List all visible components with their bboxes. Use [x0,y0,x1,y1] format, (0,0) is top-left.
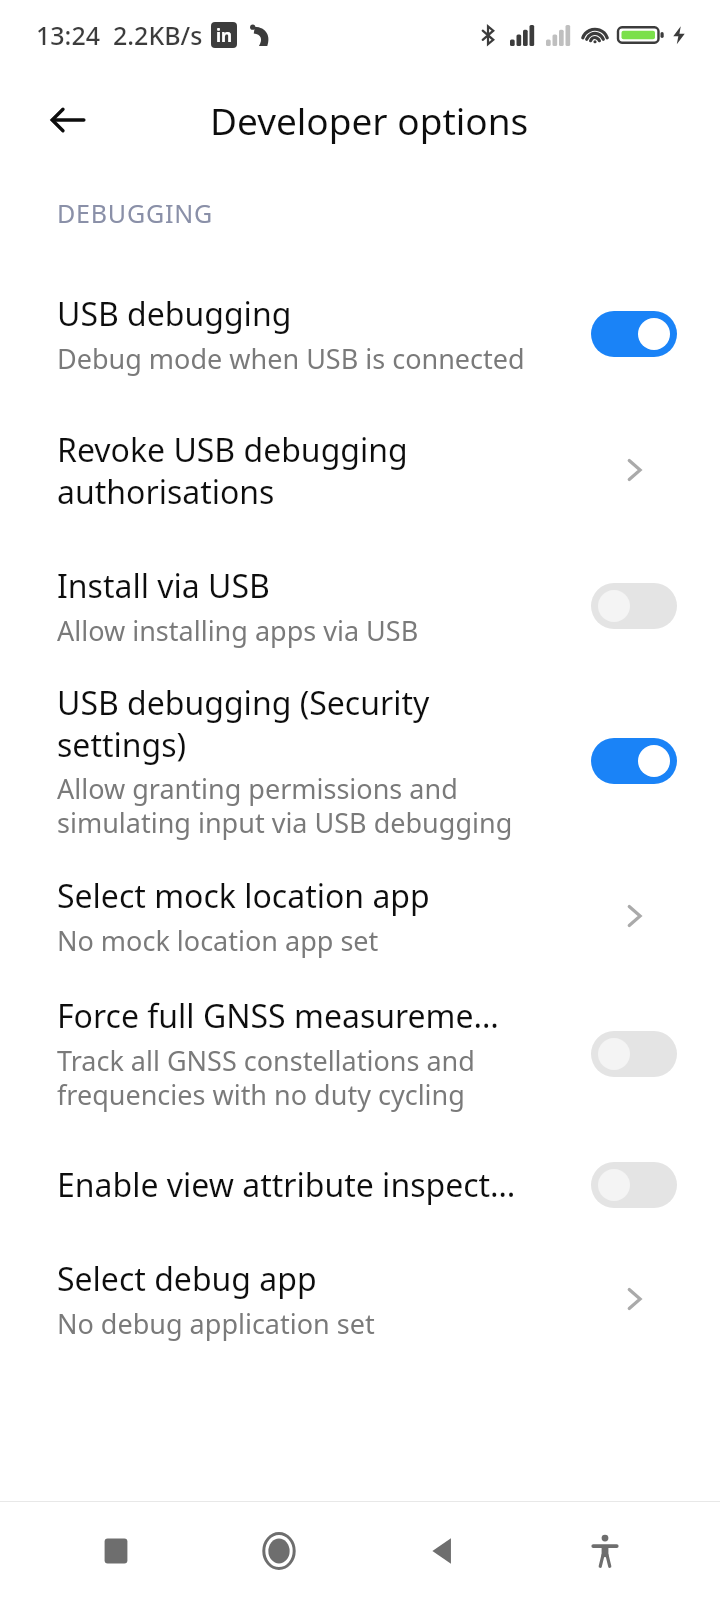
staticText: Allow granting permissions and simulatin… [57,770,564,841]
staticText: Track all GNSS constellations and freque… [57,1042,564,1113]
staticText: Install via USB [57,564,270,608]
staticText: DEBUGGING [57,196,213,230]
staticText: Select mock location app [57,874,430,918]
button[interactable]: Back [40,92,96,148]
button[interactable]: Enable view attribute inspect… [0,1131,720,1239]
staticText: USB debugging (Security settings) [57,681,564,766]
staticText: 13:24 [36,18,101,52]
staticText: in [216,24,233,47]
staticText: 2.2KB/s [113,18,203,52]
staticText: Debug mode when USB is connected [57,340,525,377]
staticText: Force full GNSS measureme… [57,994,499,1038]
button[interactable]: Force full GNSS measureme… [0,976,720,1131]
staticText: Revoke USB debugging authorisations [57,428,564,513]
button[interactable]: Select debug app [0,1239,720,1359]
button[interactable]: Revoke USB debugging authorisations [0,394,720,546]
button[interactable]: Toggle on [591,738,677,784]
button[interactable]: Accessibility [557,1503,653,1599]
staticText: Select debug app [57,1257,317,1301]
button[interactable]: Recents [68,1503,164,1599]
button[interactable]: USB debugging [0,274,720,394]
button[interactable]: Back [394,1503,490,1599]
button[interactable]: Install via USB [0,546,720,666]
staticText: Developer options [210,95,529,145]
staticText: Allow installing apps via USB [57,612,419,649]
button[interactable]: Home [231,1503,327,1599]
staticText: Enable view attribute inspect… [57,1163,516,1207]
button[interactable]: Select mock location app [0,856,720,976]
button[interactable]: Toggle on [591,311,677,357]
button[interactable]: USB debugging (Security settings) [0,666,720,856]
button[interactable]: Toggle off [591,583,677,629]
button[interactable]: Toggle off [591,1162,677,1208]
staticText: USB debugging [57,292,292,336]
staticText: No mock location app set [57,922,379,959]
button[interactable]: Toggle off [591,1031,677,1077]
staticText: No debug application set [57,1305,375,1342]
